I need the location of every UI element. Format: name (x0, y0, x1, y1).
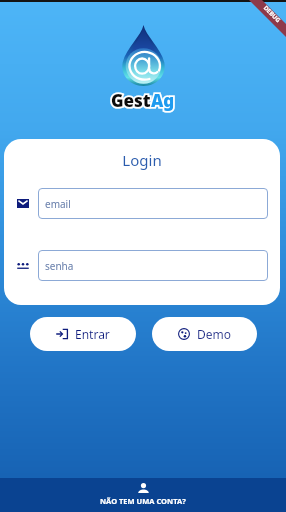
staticText: email (45, 197, 71, 211)
staticText: Ag (151, 89, 175, 112)
button[interactable]: NÃO TEM UMA CONTA? (0, 478, 286, 512)
staticText: Login (4, 150, 280, 170)
staticText: DEBUG (262, 4, 282, 24)
staticText: Entrar (75, 326, 110, 342)
button[interactable]: Demo (152, 317, 257, 351)
button[interactable]: Entrar (30, 317, 136, 351)
staticText: senha (45, 259, 74, 273)
staticText: Demo (197, 326, 232, 342)
staticText: Gest (111, 89, 151, 112)
staticText: NÃO TEM UMA CONTA? (100, 496, 186, 506)
staticText: Ag (151, 89, 175, 112)
staticText: Gest (111, 89, 151, 112)
button[interactable]: email (38, 188, 268, 219)
button[interactable]: senha (38, 250, 268, 281)
